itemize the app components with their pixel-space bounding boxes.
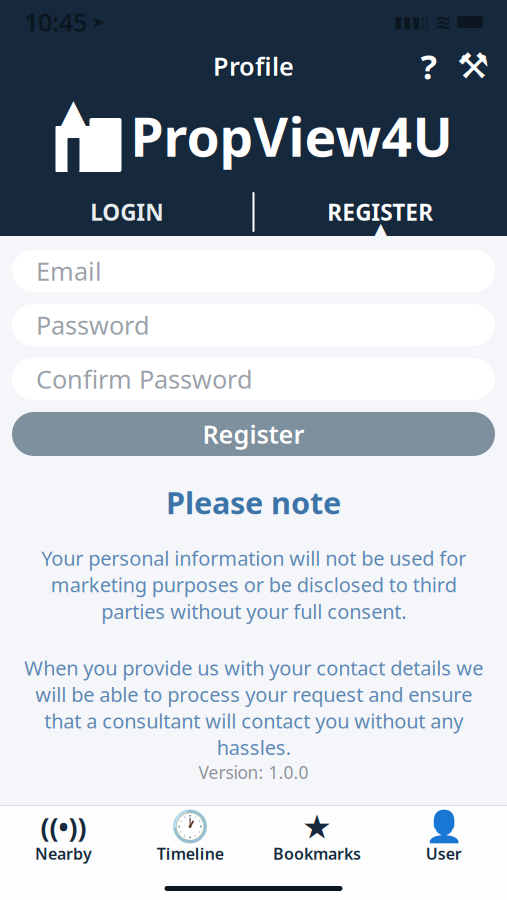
- staticText: LOGIN: [90, 197, 163, 227]
- staticText: ▲: [58, 90, 89, 136]
- staticText: PropView4U: [130, 101, 452, 171]
- staticText: Register: [202, 417, 304, 451]
- staticText: ▲: [372, 218, 389, 243]
- button[interactable]: Register: [12, 412, 495, 456]
- staticText: ➤: [91, 12, 106, 32]
- staticText: ((•)): [40, 809, 86, 845]
- staticText: ★: [302, 808, 332, 846]
- staticText: REGISTER: [327, 197, 433, 227]
- button[interactable]: REGISTER: [253, 188, 507, 236]
- button[interactable]: 🕐: [127, 814, 254, 864]
- staticText: ≋: [435, 11, 452, 33]
- staticText: When you provide us with your contact de…: [24, 654, 483, 761]
- button[interactable]: LOGIN: [0, 188, 253, 236]
- staticText: Your personal information will not be us…: [41, 545, 466, 624]
- staticText: Email: [36, 254, 102, 288]
- button[interactable]: ((•)): [0, 814, 127, 864]
- staticText: Timeline: [157, 843, 224, 864]
- staticText: Profile: [213, 49, 294, 83]
- button[interactable]: Settings: [451, 44, 495, 88]
- staticText: 10:45: [24, 5, 87, 39]
- staticText: 🕐: [171, 809, 209, 844]
- staticText: ?: [420, 43, 437, 89]
- button[interactable]: Confirm Password: [12, 358, 495, 400]
- button[interactable]: Email: [12, 250, 495, 292]
- staticText: ⚒: [457, 46, 489, 86]
- staticText: ▮▮▮▯: [394, 13, 430, 31]
- button[interactable]: Help: [407, 44, 451, 88]
- staticText: Password: [36, 308, 150, 342]
- staticText: User: [426, 843, 462, 864]
- button[interactable]: Password: [12, 304, 495, 346]
- staticText: 👤: [425, 809, 463, 844]
- staticText: Confirm Password: [36, 362, 253, 396]
- staticText: Version: 1.0.0: [198, 761, 308, 784]
- button[interactable]: 👤: [380, 814, 507, 864]
- button[interactable]: ★: [253, 814, 380, 864]
- staticText: Nearby: [35, 843, 92, 864]
- staticText: Bookmarks: [273, 843, 361, 864]
- staticText: Please note: [166, 482, 341, 523]
